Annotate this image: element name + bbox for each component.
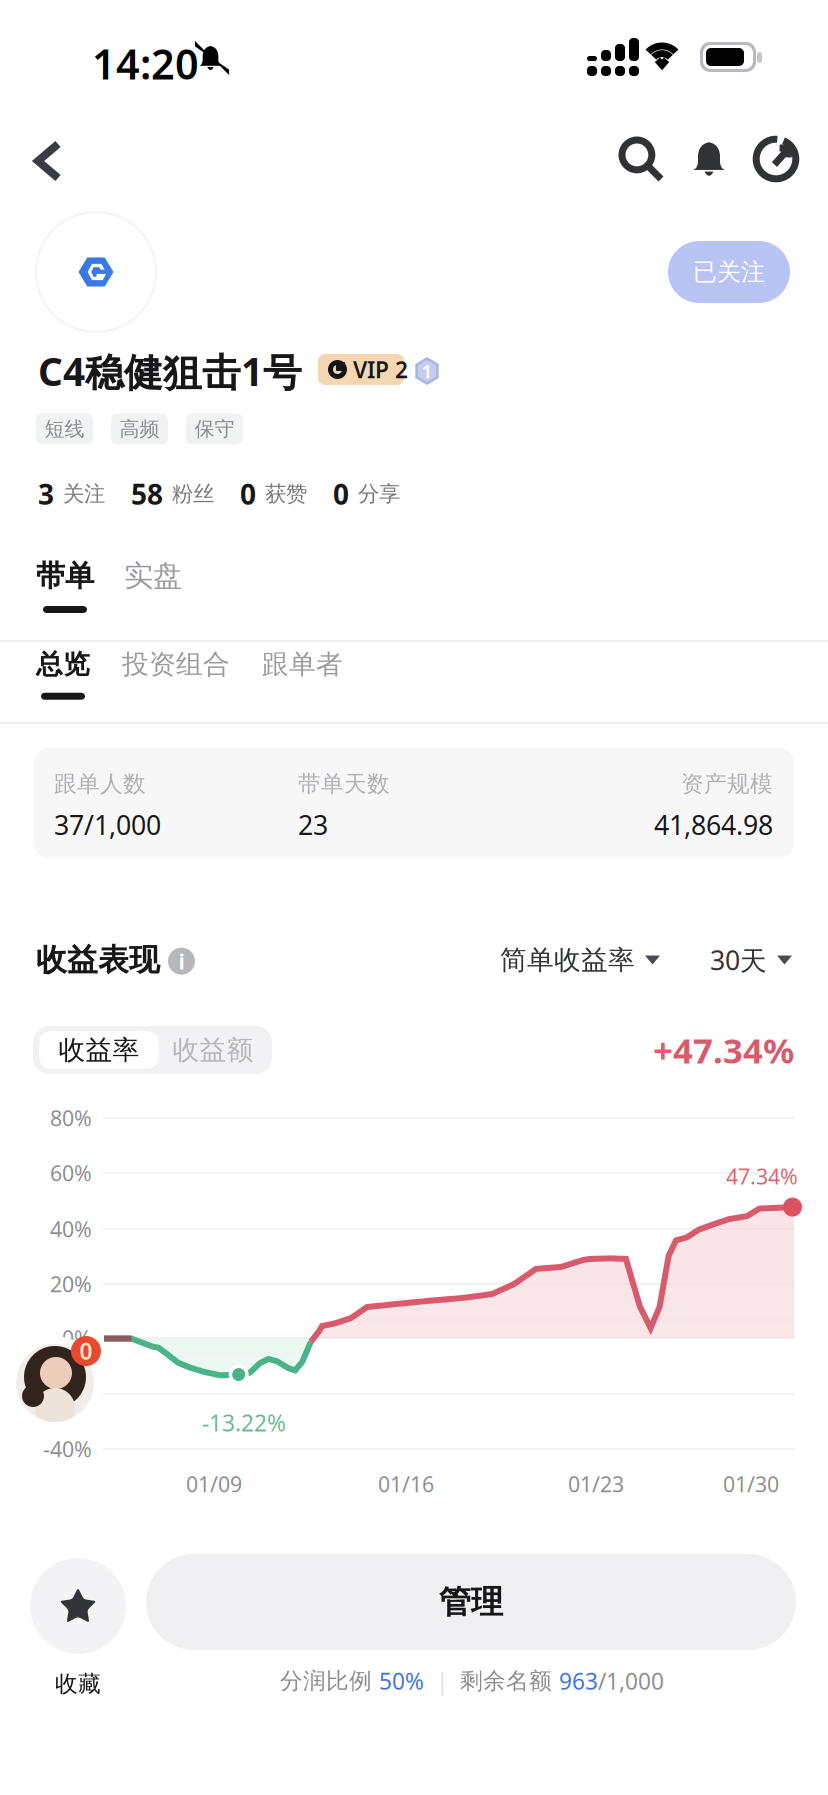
staticText: 收益率 bbox=[58, 1034, 139, 1066]
staticText: 带单 bbox=[36, 558, 94, 594]
staticText: 20% bbox=[50, 1270, 92, 1298]
staticText: 关注 bbox=[63, 481, 105, 507]
staticText: 粉丝 bbox=[172, 481, 214, 507]
staticText: 41,864.98 bbox=[654, 807, 773, 842]
button[interactable]: 收益率 bbox=[39, 1031, 159, 1069]
staticText: 投资组合 bbox=[122, 648, 230, 681]
staticText: -40% bbox=[43, 1435, 92, 1463]
button[interactable]: Notifications bbox=[666, 116, 752, 202]
button[interactable]: 投资组合 bbox=[122, 648, 230, 700]
staticText: 01/16 bbox=[378, 1470, 434, 1498]
staticText: 0% bbox=[62, 1324, 92, 1352]
staticText: 14:20 bbox=[92, 36, 199, 91]
staticText: 963 bbox=[559, 1666, 598, 1696]
staticText: 01/23 bbox=[568, 1470, 624, 1498]
staticText: 分享 bbox=[358, 481, 400, 507]
staticText: 58 bbox=[131, 475, 163, 513]
button[interactable]: 收益额 bbox=[158, 1031, 268, 1069]
staticText: 40% bbox=[50, 1215, 92, 1243]
staticText: 01/09 bbox=[186, 1470, 242, 1498]
staticText: 剩余名额 bbox=[460, 1667, 559, 1695]
staticText: 简单收益率 bbox=[500, 944, 635, 976]
button[interactable]: 实盘 bbox=[124, 558, 182, 613]
staticText: VIP 2 bbox=[353, 354, 408, 384]
staticText: 47.34% bbox=[726, 1162, 798, 1190]
staticText: 收益额 bbox=[172, 1034, 253, 1066]
button[interactable]: 总览 bbox=[36, 648, 90, 700]
staticText: 0 bbox=[333, 475, 349, 513]
staticText: 收藏 bbox=[55, 1670, 101, 1698]
staticText: 分润比例 bbox=[280, 1667, 379, 1695]
button[interactable]: 简单收益率 bbox=[500, 936, 660, 984]
staticText: 高频 bbox=[119, 417, 159, 441]
button[interactable]: 管理 bbox=[146, 1554, 796, 1650]
staticText: 跟单者 bbox=[262, 648, 343, 681]
staticText: 50% bbox=[379, 1666, 424, 1696]
staticText: 获赞 bbox=[265, 481, 307, 507]
button[interactable]: 30天 bbox=[710, 936, 792, 984]
staticText: /1,000 bbox=[598, 1666, 664, 1696]
button[interactable]: 已关注 bbox=[668, 241, 790, 303]
staticText: 01/30 bbox=[723, 1470, 779, 1498]
button[interactable]: 带单 bbox=[36, 558, 94, 613]
staticText: 0 bbox=[79, 1336, 92, 1366]
staticText: C4稳健狙击1号 bbox=[38, 345, 302, 397]
button[interactable]: Share bbox=[733, 116, 819, 202]
staticText: 37/1,000 bbox=[54, 807, 161, 842]
staticText: i bbox=[178, 947, 184, 975]
staticText: +47.34% bbox=[653, 1027, 794, 1073]
staticText: 资产规模 bbox=[681, 770, 773, 798]
staticText: 实盘 bbox=[124, 558, 182, 594]
button[interactable]: 收藏 bbox=[30, 1558, 126, 1698]
staticText: 管理 bbox=[439, 1582, 503, 1622]
staticText: 带单天数 bbox=[298, 770, 390, 798]
staticText: 0 bbox=[240, 475, 256, 513]
button[interactable]: Search bbox=[598, 116, 684, 202]
staticText: 保守 bbox=[194, 417, 234, 441]
staticText: 23 bbox=[298, 807, 328, 842]
staticText: 80% bbox=[50, 1104, 92, 1132]
staticText: | bbox=[424, 1666, 460, 1696]
staticText: 跟单人数 bbox=[54, 770, 146, 798]
staticText: 30天 bbox=[710, 942, 767, 978]
staticText: 总览 bbox=[36, 648, 90, 681]
staticText: 3 bbox=[38, 475, 54, 513]
staticText: 短线 bbox=[44, 417, 84, 441]
button[interactable]: 跟单者 bbox=[262, 648, 343, 700]
staticText: -13.22% bbox=[202, 1408, 286, 1438]
staticText: 已关注 bbox=[693, 257, 765, 287]
staticText: 60% bbox=[50, 1159, 92, 1187]
staticText: 1 bbox=[421, 359, 432, 383]
button[interactable]: Back bbox=[12, 116, 84, 206]
staticText: 收益表现 bbox=[36, 941, 160, 979]
